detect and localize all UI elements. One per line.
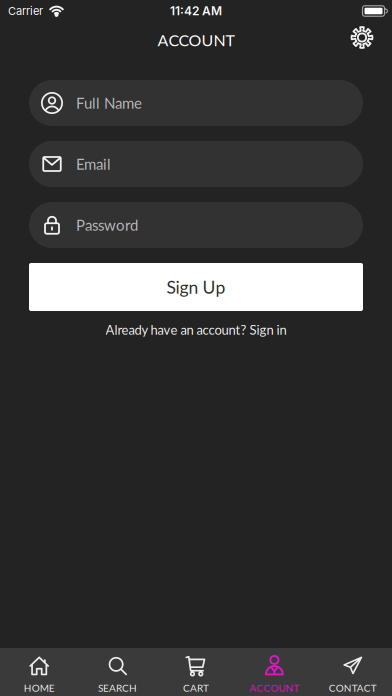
button[interactable]: HOME — [0, 654, 78, 694]
staticText: Sign Up — [166, 276, 225, 297]
button[interactable]: Sign Up — [29, 263, 363, 311]
button[interactable]: CONTACT — [314, 654, 392, 694]
staticText: Already have an account? Sign in — [105, 322, 286, 338]
staticText: CONTACT — [329, 682, 377, 694]
staticText: Email — [76, 155, 111, 173]
button[interactable]: Full Name — [29, 80, 363, 126]
staticText: Carrier — [8, 4, 43, 18]
button[interactable]: Settings — [351, 26, 373, 48]
staticText: ACCOUNT — [249, 682, 299, 694]
staticText: ACCOUNT — [157, 30, 234, 50]
button[interactable]: Already have an account? Sign in — [105, 322, 286, 338]
staticText: Full Name — [76, 94, 142, 112]
button[interactable]: ACCOUNT — [235, 654, 314, 694]
button[interactable]: Email — [29, 141, 363, 187]
button[interactable]: Password — [29, 202, 363, 248]
staticText: CART — [183, 682, 209, 694]
staticText: Password — [76, 216, 138, 234]
staticText: HOME — [24, 682, 55, 694]
button[interactable]: CART — [157, 654, 235, 694]
staticText: 11:42 AM — [170, 4, 222, 18]
button[interactable]: SEARCH — [78, 654, 157, 694]
staticText: SEARCH — [98, 682, 137, 694]
